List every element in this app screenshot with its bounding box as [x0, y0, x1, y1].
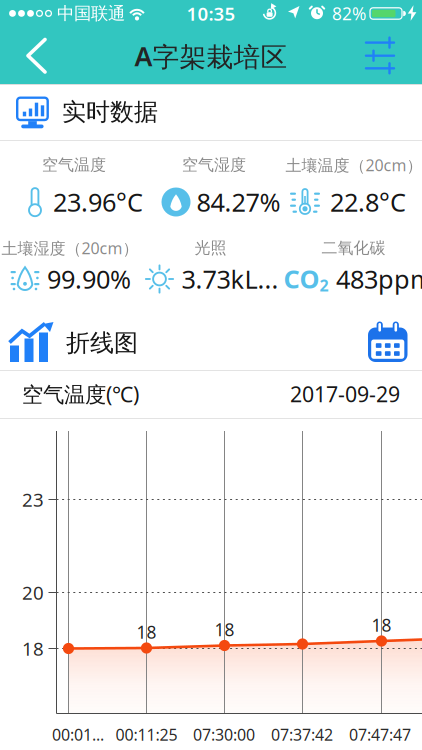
button[interactable]: 筛选	[356, 28, 412, 84]
staticText: 18	[214, 618, 234, 641]
staticText: 折线图	[66, 328, 138, 358]
staticText: 23.96°C	[53, 185, 143, 219]
button[interactable]: 返回	[0, 28, 60, 84]
staticText: 483ppm	[336, 262, 422, 296]
staticText: 82%	[332, 2, 366, 25]
staticText: 18	[136, 620, 156, 643]
staticText: 10:35	[186, 1, 235, 26]
staticText: 空气温度(℃)	[22, 380, 139, 408]
staticText: 2017-09-29	[290, 380, 400, 408]
staticText: 07:30:00	[193, 724, 255, 745]
staticText: 00:01...	[52, 724, 104, 745]
staticText: CO2	[283, 262, 328, 296]
staticText: 空气温度	[42, 155, 106, 175]
staticText: 3.73kL...	[181, 262, 278, 296]
button[interactable]: 选择日期	[360, 315, 416, 369]
staticText: A字架栽培区	[134, 38, 287, 74]
staticText: 22.8°C	[330, 185, 406, 219]
staticText: 07:47:47	[349, 724, 411, 745]
staticText: 20	[22, 580, 44, 605]
staticText: 84.27%	[196, 185, 280, 219]
staticText: 中国联通	[57, 3, 125, 24]
staticText: 00:11:25	[115, 724, 177, 745]
staticText: 光照	[194, 238, 226, 258]
staticText: 实时数据	[62, 97, 158, 127]
staticText: 18	[371, 613, 391, 636]
staticText: 99.90%	[47, 262, 131, 296]
staticText: 空气湿度	[182, 155, 246, 175]
staticText: 23	[22, 487, 44, 512]
staticText: 07:37:42	[271, 724, 333, 745]
staticText: 土壤温度（20cm）	[285, 154, 422, 176]
staticText: 土壤湿度（20cm）	[1, 237, 138, 259]
staticText: 二氧化碳	[321, 238, 385, 258]
staticText: 18	[22, 636, 44, 661]
